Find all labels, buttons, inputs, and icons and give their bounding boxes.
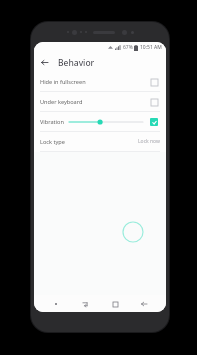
button[interactable] bbox=[69, 117, 143, 127]
staticText: Vibration bbox=[40, 118, 64, 126]
staticText: Behavior bbox=[58, 57, 95, 69]
staticText: Lock type bbox=[40, 138, 138, 146]
button[interactable]: Back bbox=[38, 56, 51, 69]
button[interactable]: Toggle bbox=[148, 116, 160, 128]
button[interactable]: Vibration bbox=[34, 112, 166, 131]
button[interactable]: Hide keyboard bbox=[78, 297, 92, 311]
staticText: Hide in fullscreen bbox=[40, 78, 148, 86]
button[interactable]: Back bbox=[137, 297, 151, 311]
staticText: 10:51 AM bbox=[140, 44, 162, 51]
button[interactable]: Hide in fullscreen bbox=[34, 72, 166, 91]
button[interactable]: Lock type bbox=[34, 132, 166, 151]
staticText: Under keyboard bbox=[40, 98, 148, 106]
button[interactable]: Under keyboard bbox=[34, 92, 166, 111]
staticText: Lock now bbox=[138, 138, 160, 145]
button[interactable]: Toggle bbox=[148, 76, 160, 88]
staticText: 67% bbox=[123, 44, 133, 51]
button[interactable]: Menu bbox=[49, 297, 63, 311]
button[interactable]: Recent apps bbox=[108, 297, 122, 311]
button[interactable]: Add bbox=[122, 221, 144, 243]
button[interactable]: Toggle bbox=[148, 96, 160, 108]
